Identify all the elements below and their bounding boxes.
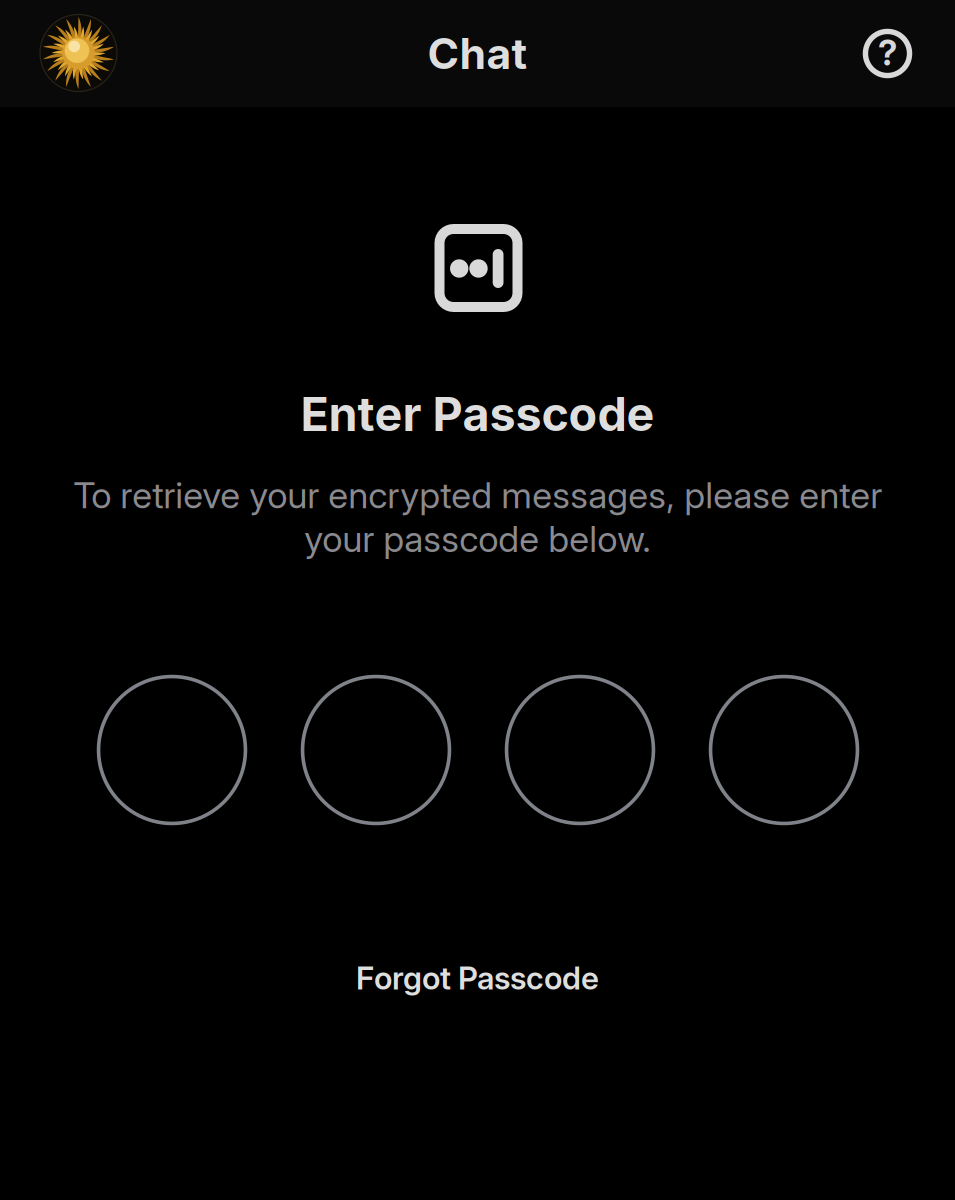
staticText: ? xyxy=(878,32,897,74)
button[interactable]: Profile xyxy=(34,8,123,97)
staticText: Enter Passcode xyxy=(300,386,654,442)
button[interactable]: Forgot Passcode xyxy=(340,947,615,1009)
staticText: Forgot Passcode xyxy=(356,959,599,997)
staticText: To retrieve your encrypted messages, ple… xyxy=(73,473,882,560)
button[interactable]: Help xyxy=(854,20,921,87)
staticText: Chat xyxy=(427,28,527,79)
